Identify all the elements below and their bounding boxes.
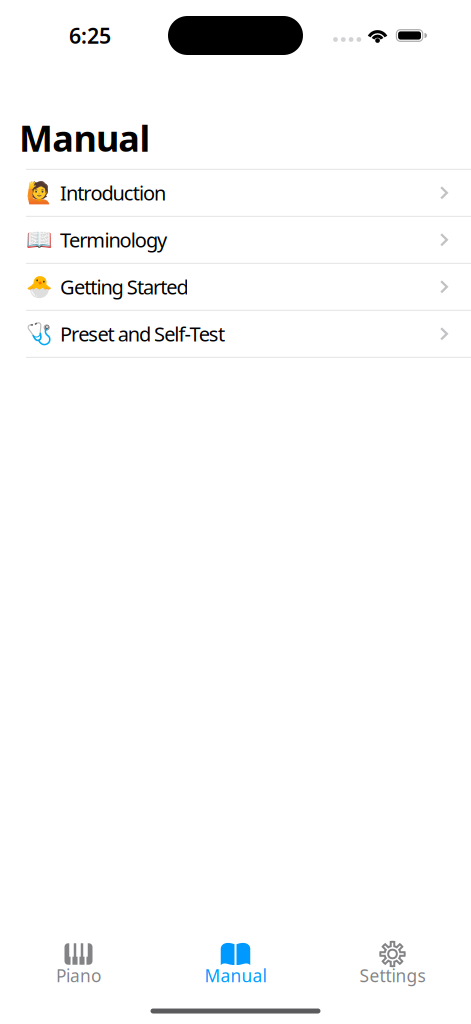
- button[interactable]: 📖: [0, 217, 471, 264]
- staticText: Getting Started: [60, 273, 188, 300]
- staticText: Piano: [56, 964, 101, 987]
- staticText: Settings: [359, 964, 425, 987]
- button[interactable]: 🩺: [0, 311, 471, 358]
- staticText: 6:25: [69, 21, 111, 50]
- button[interactable]: Manual: [157, 941, 314, 984]
- staticText: Manual: [204, 964, 266, 987]
- staticText: 📖: [25, 228, 52, 252]
- staticText: Introduction: [60, 179, 166, 206]
- staticText: Terminology: [60, 226, 167, 253]
- button[interactable]: Settings: [314, 941, 471, 984]
- staticText: 🙋: [25, 181, 52, 205]
- staticText: Manual: [19, 114, 150, 162]
- staticText: Preset and Self-Test: [60, 320, 225, 347]
- button[interactable]: Piano: [0, 941, 157, 984]
- staticText: 🐣: [25, 275, 52, 299]
- staticText: 🩺: [25, 322, 52, 346]
- button[interactable]: 🙋: [0, 170, 471, 217]
- button[interactable]: 🐣: [0, 264, 471, 311]
